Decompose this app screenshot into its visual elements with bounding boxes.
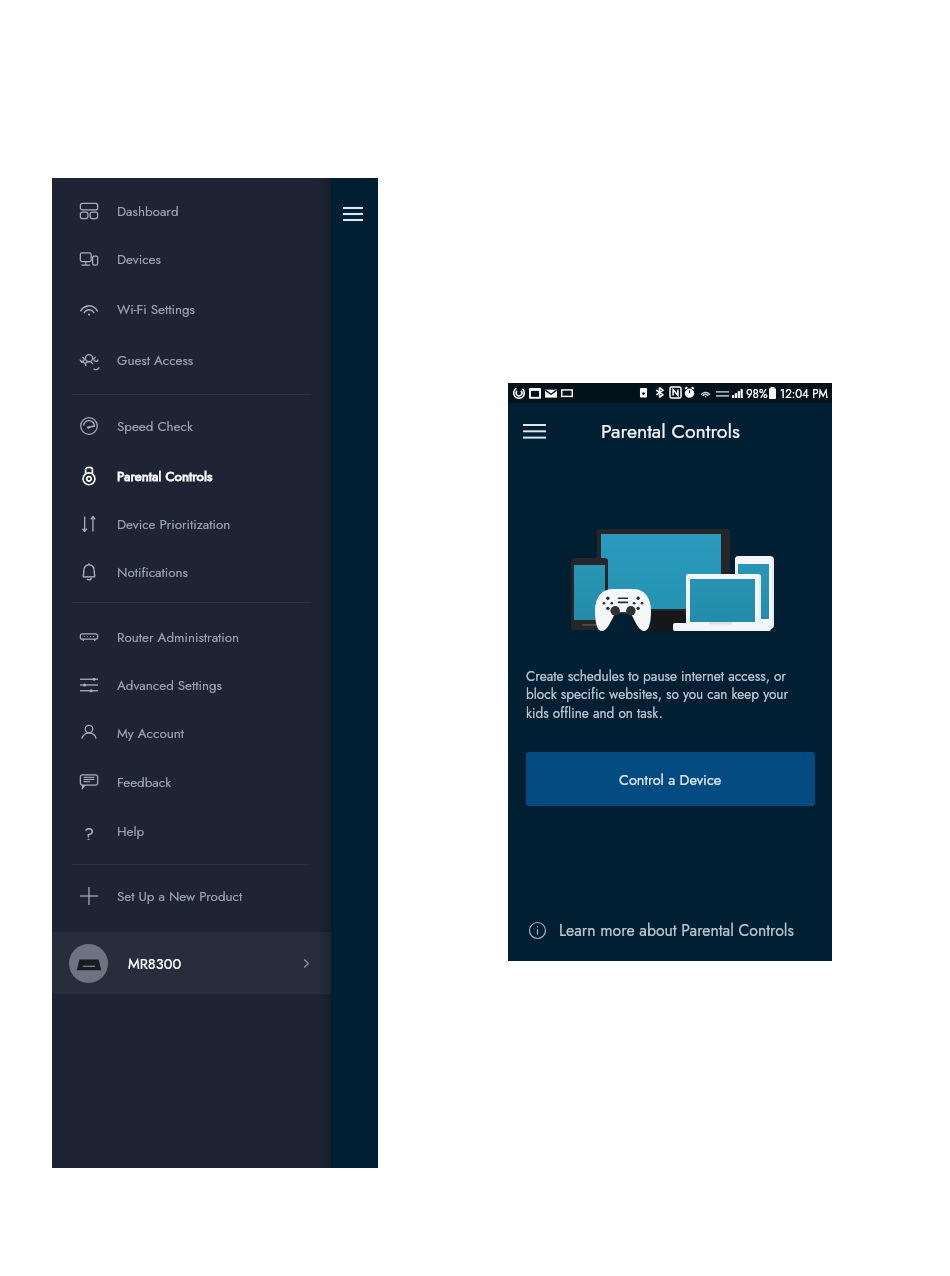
- button[interactable]: Device Prioritization: [52, 500, 331, 548]
- staticText: Create schedules to pause internet acces…: [526, 666, 811, 723]
- staticText: Speed Check: [117, 417, 193, 436]
- staticText: Guest Access: [117, 351, 194, 370]
- button[interactable]: ?: [52, 807, 331, 855]
- staticText: Dashboard: [117, 202, 179, 221]
- staticText: Feedback: [117, 773, 172, 792]
- staticText: Wi-Fi Settings: [117, 300, 195, 319]
- staticText: Router Administration: [117, 628, 240, 647]
- staticText: MR8300: [128, 953, 182, 974]
- button[interactable]: Speed Check: [52, 402, 331, 450]
- staticText: Devices: [117, 250, 161, 269]
- button[interactable]: Notifications: [52, 548, 331, 596]
- button[interactable]: My Account: [52, 709, 331, 757]
- staticText: ?: [84, 822, 95, 840]
- staticText: My Account: [117, 724, 184, 743]
- staticText: Help: [117, 822, 145, 841]
- button[interactable]: Wi-Fi Settings: [52, 285, 331, 333]
- button[interactable]: Open navigation menu: [517, 407, 551, 455]
- button[interactable]: Open navigation menu: [336, 197, 370, 231]
- button[interactable]: Parental Controls: [52, 452, 331, 500]
- button[interactable]: Feedback: [52, 758, 331, 806]
- staticText: Device Prioritization: [117, 515, 231, 534]
- staticText: Control a Device: [619, 769, 722, 790]
- staticText: 12:04 PM: [780, 386, 828, 403]
- staticText: Set Up a New Product: [117, 887, 243, 906]
- staticText: 98%: [746, 386, 768, 403]
- staticText: Learn more about Parental Controls: [559, 919, 794, 942]
- button[interactable]: MR8300: [52, 932, 331, 994]
- button[interactable]: Devices: [52, 235, 331, 283]
- staticText: Advanced Settings: [117, 676, 222, 695]
- button[interactable]: Set Up a New Product: [52, 872, 331, 920]
- staticText: Notifications: [117, 563, 188, 582]
- staticText: Parental Controls: [601, 417, 740, 445]
- button[interactable]: Dashboard: [52, 187, 331, 235]
- button[interactable]: Router Administration: [52, 613, 331, 661]
- button[interactable]: Learn more about Parental Controls: [508, 910, 832, 950]
- button[interactable]: Guest Access: [52, 336, 331, 384]
- button[interactable]: Control a Device: [526, 752, 815, 806]
- button[interactable]: Advanced Settings: [52, 661, 331, 709]
- staticText: Parental Controls: [117, 467, 213, 486]
